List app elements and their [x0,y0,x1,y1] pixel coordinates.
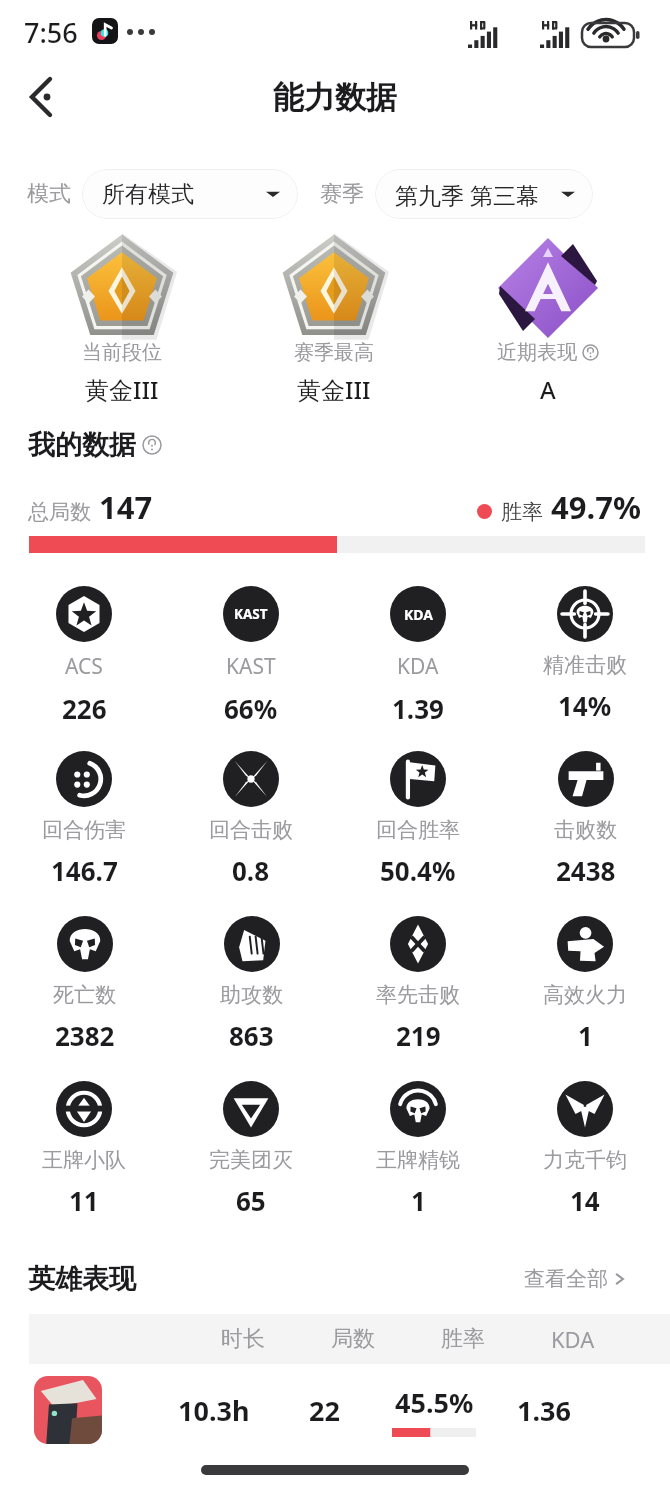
staticText: 863 [229,1018,274,1053]
staticText: 1 [411,1183,426,1218]
staticText: 219 [396,1018,441,1053]
staticText: 7:56 [24,14,78,51]
staticText: ACS [65,652,103,681]
staticText: KDA [397,652,439,681]
staticText: 击败数 [554,817,617,843]
staticText: 0.8 [232,853,270,888]
staticText: 146.7 [51,853,118,888]
staticText: 22 [309,1392,340,1429]
staticText: 率先击败 [376,982,460,1008]
staticText: 14 [570,1183,600,1218]
staticText: 时长 [221,1325,265,1353]
button[interactable]: KAST [171,586,331,738]
staticText: KDA [404,605,433,624]
staticText: 黄金III [297,373,371,406]
staticText: 45.5% [395,1384,474,1421]
staticText: KAST [234,605,268,623]
button[interactable]: 当前段位 [37,340,207,406]
button[interactable]: 10.3h [0,1370,670,1450]
staticText: 赛季最高 [294,340,374,365]
staticText: 第九季 第三幕 [395,179,539,210]
staticText: 回合击败 [209,817,293,843]
button[interactable]: 赛季最高 [249,340,419,406]
staticText: 226 [62,691,107,726]
staticText: 胜率 [501,499,543,525]
staticText: 能力数据 [273,78,397,117]
button[interactable]: 回合胜率 [338,751,498,903]
button[interactable]: 回合击败 [171,751,331,903]
button[interactable]: 死亡数 [4,916,164,1068]
staticText: 所有模式 [102,180,194,209]
button[interactable]: 第九季 第三幕 [375,169,593,219]
staticText: 助攻数 [220,982,283,1008]
staticText: 局数 [331,1325,375,1353]
button[interactable]: 助攻数 [171,916,331,1068]
staticText: 胜率 [441,1325,485,1353]
staticText: 高效火力 [543,982,627,1008]
staticText: 10.3h [178,1392,250,1429]
button[interactable]: KDA [338,586,498,738]
staticText: 14% [558,688,612,723]
button[interactable]: 完美团灭 [171,1081,331,1233]
staticText: 1 [578,1018,593,1053]
button[interactable]: 精准击败 [505,586,665,738]
button[interactable]: 王牌小队 [4,1081,164,1233]
staticText: 65 [236,1183,266,1218]
button[interactable]: 王牌精锐 [338,1081,498,1233]
staticText: 49.7% [551,486,641,528]
button[interactable]: 力克千钧 [505,1081,665,1233]
staticText: 模式 [27,180,71,208]
button[interactable]: 高效火力 [505,916,665,1068]
button[interactable]: 英雄表现 [28,1262,136,1296]
staticText: 66% [224,691,278,726]
button[interactable]: 回合伤害 [4,751,164,903]
staticText: A [540,373,556,406]
staticText: 我的数据 [28,428,136,462]
staticText: 黄金III [85,373,159,406]
staticText: 回合胜率 [376,817,460,843]
button[interactable]: 率先击败 [338,916,498,1068]
button[interactable]: 查看全部 [524,1266,629,1292]
staticText: 当前段位 [82,340,162,365]
staticText: 赛季 [320,180,364,208]
staticText: 1.39 [392,691,444,726]
staticText: 英雄表现 [28,1262,136,1296]
staticText: 11 [69,1183,99,1218]
button[interactable]: 击败数 [505,751,665,903]
staticText: 50.4% [380,853,456,888]
staticText: 近期表现 [497,340,577,365]
staticText: 死亡数 [53,982,116,1008]
staticText: 查看全部 [524,1266,608,1292]
staticText: 1.36 [517,1392,571,1429]
staticText: 回合伤害 [42,817,126,843]
staticText: 2438 [556,853,616,888]
button[interactable]: Back [10,66,72,128]
staticText: 2382 [55,1018,115,1053]
staticText: 力克千钧 [543,1147,627,1173]
staticText: 完美团灭 [209,1147,293,1173]
staticText: KDA [551,1324,595,1354]
staticText: 总局数 [28,499,91,525]
button[interactable]: 近期表现 [463,340,633,406]
button[interactable]: ACS [4,586,164,738]
staticText: 精准击败 [543,652,627,678]
staticText: 王牌小队 [42,1147,126,1173]
staticText: KAST [226,652,276,681]
staticText: 王牌精锐 [376,1147,460,1173]
button[interactable]: 所有模式 [82,169,298,219]
staticText: 147 [99,486,153,528]
